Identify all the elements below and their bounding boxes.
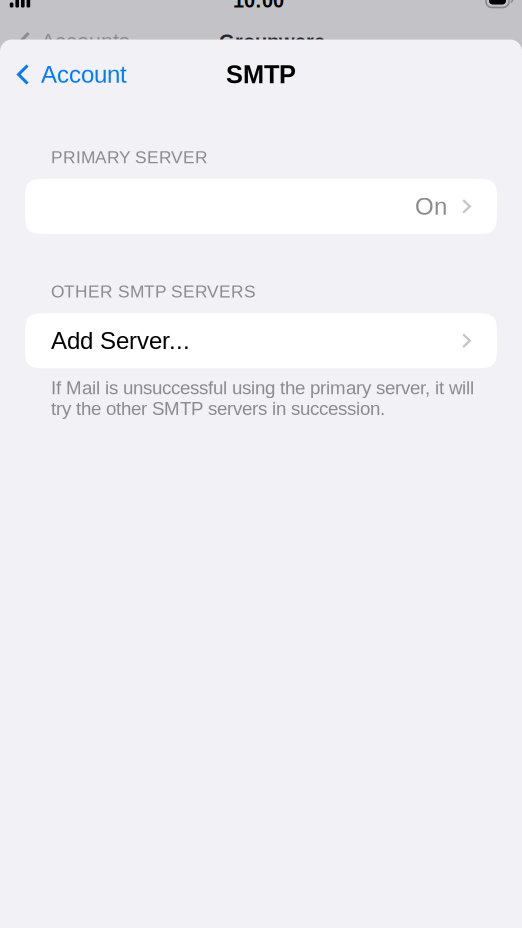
staticText: If Mail is unsuccessful using the primar… [51, 377, 474, 419]
staticText: PRIMARY SERVER [51, 147, 208, 167]
staticText: Groupware [219, 30, 325, 53]
staticText: Account [41, 61, 127, 88]
button[interactable]: Account [0, 39, 141, 97]
staticText: SMTP [226, 60, 296, 89]
button[interactable]: On [25, 179, 497, 234]
staticText: Accounts [414, 30, 503, 53]
staticText: Add Server... [51, 327, 190, 354]
staticText: OTHER SMTP SERVERS [51, 282, 256, 301]
button[interactable]: Add Server... [25, 313, 497, 368]
staticText: On [415, 193, 447, 220]
staticText: Accounts [41, 30, 130, 53]
staticText: 10:00 [233, 0, 284, 12]
